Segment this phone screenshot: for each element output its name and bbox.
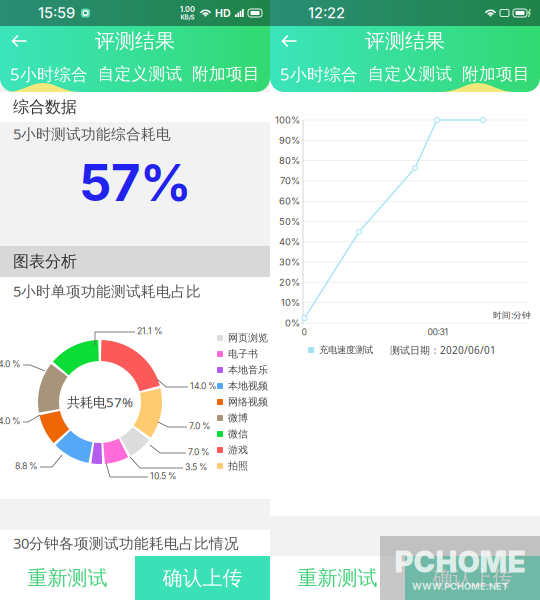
staticText: 微博: [228, 412, 248, 424]
button[interactable]: 自定义测试: [97, 57, 182, 91]
staticText: 7.0 %: [189, 421, 211, 431]
staticText: 共耗电57%: [67, 393, 133, 411]
staticText: 确认上传: [162, 565, 242, 591]
staticText: 5小时综合: [280, 63, 358, 85]
staticText: 8.8 %: [15, 461, 38, 471]
staticText: 40%: [279, 236, 300, 247]
staticText: 21.1 %: [137, 326, 163, 336]
staticText: PCHOME: [394, 544, 525, 580]
staticText: 14.0 %: [0, 416, 21, 426]
staticText: 重新测试: [27, 565, 107, 591]
staticText: 测试日期：2020/06/01: [390, 343, 496, 357]
button[interactable]: Back: [0, 26, 38, 56]
staticText: 20%: [279, 277, 300, 288]
staticText: 自定义测试: [367, 63, 452, 84]
staticText: 网页浏览: [228, 332, 268, 344]
button[interactable]: 5小时综合: [10, 57, 88, 91]
button[interactable]: 确认上传: [405, 556, 540, 600]
staticText: 70%: [280, 175, 300, 187]
staticText: 电子书: [228, 348, 258, 360]
staticText: 50%: [279, 216, 300, 227]
staticText: 30%: [279, 256, 300, 268]
staticText: 10%: [281, 297, 300, 308]
button[interactable]: 确认上传: [135, 556, 270, 600]
staticText: 确认上传: [432, 565, 512, 591]
staticText: 充电速度测试: [319, 344, 373, 356]
staticText: 5小时单项功能测试耗电占比: [13, 281, 201, 301]
staticText: 60%: [279, 196, 300, 207]
staticText: HD: [215, 6, 231, 19]
staticText: 1.00: [180, 5, 195, 14]
staticText: 0%: [285, 317, 300, 329]
staticText: 90%: [279, 135, 300, 146]
staticText: 游戏: [228, 444, 248, 456]
staticText: 评测结果: [95, 28, 175, 54]
button[interactable]: 附加项目: [462, 57, 530, 91]
staticText: 80%: [279, 155, 300, 166]
staticText: 时间:分钟: [493, 309, 531, 321]
staticText: 拍照: [228, 460, 248, 472]
staticText: WWW.PCHOME.NET: [412, 581, 508, 592]
staticText: 0: [301, 327, 306, 337]
staticText: 57%: [79, 152, 191, 213]
button[interactable]: 重新测试: [0, 556, 135, 600]
staticText: 本地视频: [228, 380, 268, 392]
staticText: 图表分析: [13, 251, 77, 272]
staticText: 网络视频: [228, 396, 268, 408]
staticText: 3.5 %: [185, 462, 208, 472]
staticText: 14.0 %: [0, 359, 21, 369]
button[interactable]: 自定义测试: [367, 57, 452, 91]
staticText: 综合数据: [13, 97, 77, 117]
button[interactable]: 5小时综合: [280, 57, 358, 91]
staticText: 本地音乐: [228, 364, 268, 376]
staticText: 附加项目: [192, 63, 260, 84]
staticText: 14.0 %: [190, 381, 217, 391]
staticText: 30分钟各项测试功能耗电占比情况: [13, 533, 239, 553]
staticText: 7.0 %: [188, 447, 210, 457]
staticText: 5小时测试功能综合耗电: [13, 124, 171, 144]
staticText: 评测结果: [365, 28, 445, 54]
button[interactable]: 附加项目: [192, 57, 260, 91]
staticText: 00:31: [427, 327, 448, 337]
button[interactable]: Back: [270, 26, 308, 56]
staticText: 100%: [275, 114, 300, 126]
staticText: 自定义测试: [97, 63, 182, 84]
button[interactable]: 重新测试: [270, 556, 405, 600]
staticText: 12:22: [308, 4, 345, 22]
staticText: 微信: [228, 428, 248, 440]
staticText: 15:59: [38, 4, 75, 22]
staticText: 10.5 %: [150, 471, 177, 481]
staticText: 重新测试: [297, 565, 377, 591]
staticText: 5小时综合: [10, 63, 88, 85]
staticText: 附加项目: [462, 63, 530, 84]
staticText: KB/S: [180, 14, 194, 21]
